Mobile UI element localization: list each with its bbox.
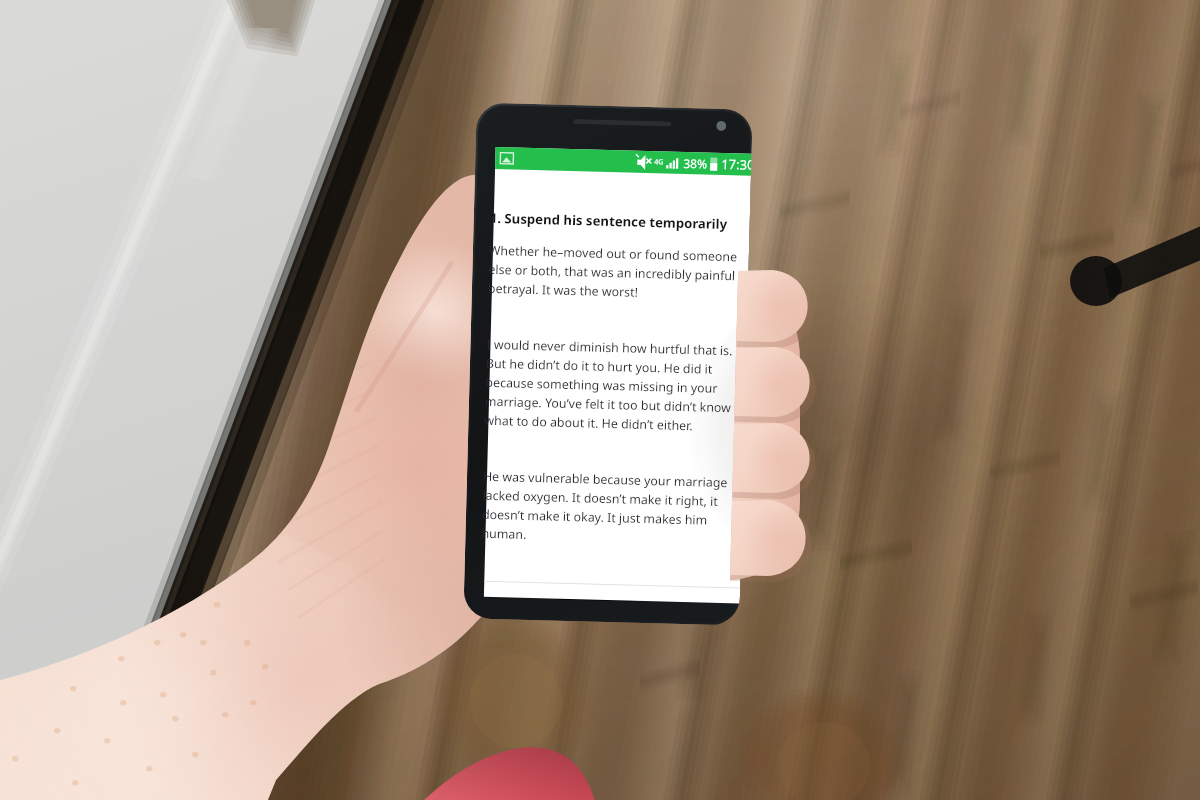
button[interactable]: 4G	[484, 147, 752, 603]
staticText: I would never diminish how hurtful that …	[484, 336, 741, 434]
staticText: Whether he–moved out or found someone el…	[488, 242, 743, 302]
staticText: 1. Suspend his sentence temporarily	[489, 209, 728, 233]
staticText: 38%	[683, 155, 707, 171]
staticText: 17:30	[721, 155, 751, 174]
staticText: 4G	[654, 157, 664, 167]
staticText: He was vulnerable because your marriage …	[481, 468, 737, 547]
